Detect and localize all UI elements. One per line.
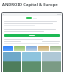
staticText: ANDROID Capital & Europe — [2, 2, 58, 8]
button[interactable]: Photo 1 — [3, 46, 13, 51]
button[interactable]: Landscape 3 — [42, 52, 61, 72]
button[interactable]: Photo 5 — [50, 46, 61, 51]
button[interactable] — [4, 17, 60, 19]
button[interactable]: Photo 4 — [38, 46, 49, 51]
button[interactable]: Photo 2 — [14, 46, 25, 51]
button[interactable]: Landscape 1 — [3, 52, 21, 72]
button[interactable]: Photo 3 — [26, 46, 37, 51]
button[interactable]: Primary action — [4, 34, 60, 37]
button[interactable]: Landscape 2 — [22, 52, 41, 72]
